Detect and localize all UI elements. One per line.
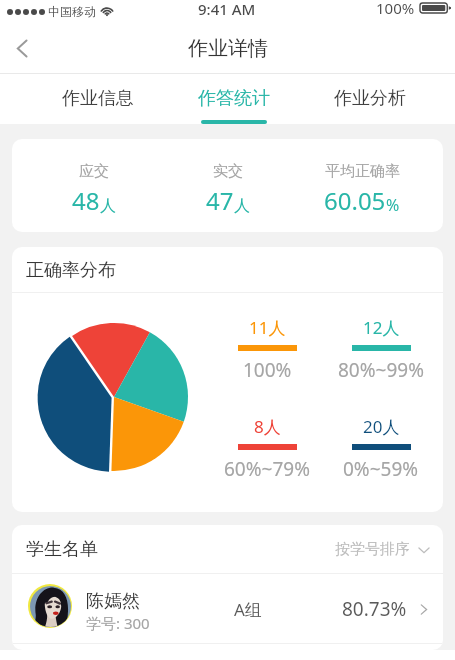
staticText: 0%~59% (343, 456, 419, 482)
staticText: 人 (100, 196, 116, 216)
button[interactable]: 作答统计 (166, 74, 302, 124)
button[interactable]: 应交 (26, 158, 161, 213)
button[interactable]: Back (0, 25, 46, 71)
staticText: 100% (243, 357, 292, 383)
staticText: 学号: 300 (86, 613, 150, 633)
button[interactable]: 20人 (324, 415, 438, 482)
staticText: 12人 (363, 316, 400, 339)
button[interactable]: 实交 (161, 158, 295, 213)
staticText: 20人 (363, 415, 400, 438)
staticText: A组 (234, 598, 262, 621)
staticText: 人 (234, 196, 250, 216)
staticText: 作业详情 (188, 36, 268, 61)
button[interactable]: 8人 (210, 415, 324, 482)
staticText: 正确率分布 (26, 259, 116, 282)
staticText: 100% (376, 0, 415, 18)
staticText: 实交 (213, 162, 243, 181)
staticText: 48 (72, 184, 100, 217)
staticText: 47 (206, 184, 234, 217)
staticText: 9:41 AM (198, 0, 256, 19)
staticText: 作答统计 (198, 87, 270, 110)
staticText: 陈嫣然 (86, 590, 140, 613)
staticText: 作业分析 (334, 87, 406, 110)
staticText: 应交 (79, 162, 109, 181)
staticText: 平均正确率 (325, 162, 400, 181)
button[interactable]: 陈嫣然 (12, 574, 443, 644)
staticText: 8人 (254, 415, 281, 438)
staticText: 60.05 (324, 184, 386, 217)
button[interactable]: 12人 (324, 316, 438, 383)
button[interactable]: 平均正确率 (295, 158, 429, 213)
button[interactable]: 按学号排序 (335, 540, 443, 559)
staticText: 11人 (249, 316, 286, 339)
staticText: 中国移动 (48, 4, 96, 19)
button[interactable]: 11人 (210, 316, 324, 383)
staticText: 作业信息 (62, 87, 134, 110)
staticText: 80.73% (342, 596, 407, 622)
button[interactable]: 作业分析 (302, 74, 438, 124)
staticText: 60%~79% (224, 456, 310, 482)
staticText: 80%~99% (338, 357, 424, 383)
staticText: 学生名单 (26, 538, 98, 561)
button[interactable]: 作业信息 (30, 74, 166, 124)
staticText: % (386, 194, 400, 216)
staticText: 按学号排序 (335, 540, 410, 559)
